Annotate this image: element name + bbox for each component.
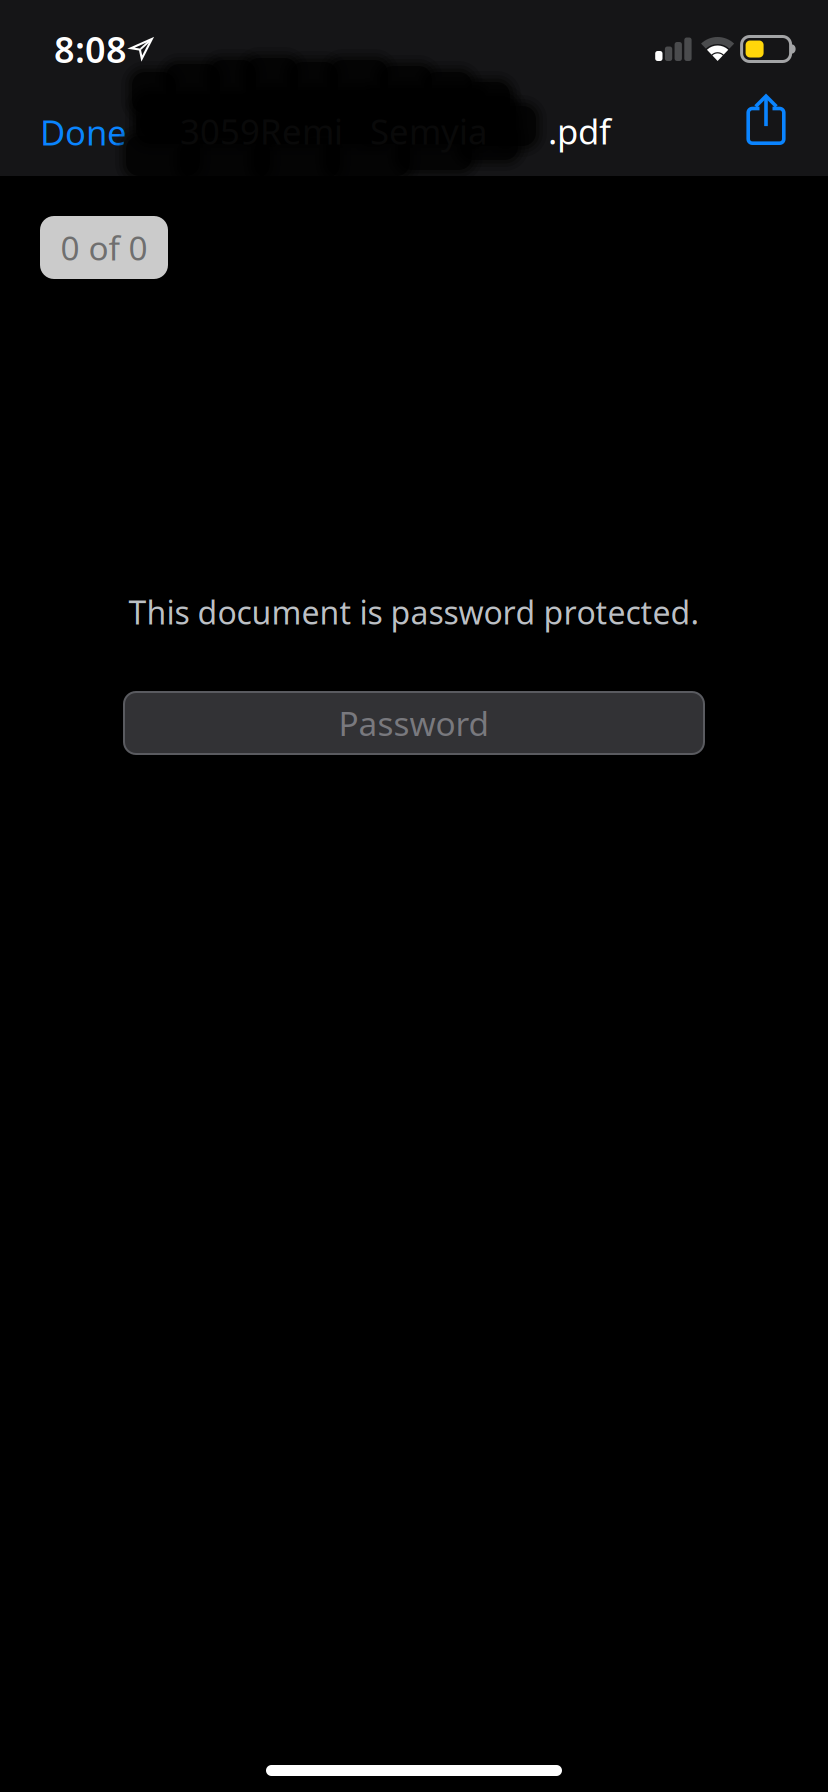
staticText: Password — [338, 701, 489, 745]
button[interactable]: Done — [26, 97, 141, 167]
button[interactable]: Share — [727, 92, 801, 171]
staticText: Done — [40, 109, 127, 155]
staticText: 8:08 — [54, 25, 127, 73]
staticText: .pdf — [548, 108, 611, 154]
staticText: 0 of 0 — [60, 225, 147, 270]
staticText: This document is password protected. — [128, 591, 699, 633]
button[interactable]: Password — [124, 692, 704, 754]
